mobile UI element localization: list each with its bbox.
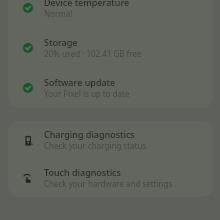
staticText: Your Pixel is up to date — [44, 88, 130, 99]
staticText: Check your hardware and settings — [44, 178, 173, 189]
staticText: 20% used · 102.41 GB free — [44, 48, 142, 59]
staticText: Charging diagnostics — [44, 128, 135, 140]
button[interactable]: Touch diagnostics — [8, 159, 213, 197]
staticText: Touch diagnostics — [44, 166, 121, 178]
button[interactable]: Charging diagnostics — [8, 121, 213, 159]
staticText: Software update — [44, 76, 116, 88]
button[interactable]: Storage — [8, 28, 213, 68]
button[interactable]: Device temperature — [8, 0, 213, 28]
button[interactable]: Software update — [8, 68, 213, 108]
staticText: Storage — [44, 36, 78, 48]
staticText: Check your charging status — [44, 140, 147, 151]
staticText: Device temperature — [44, 0, 130, 8]
staticText: Normal — [44, 8, 73, 19]
